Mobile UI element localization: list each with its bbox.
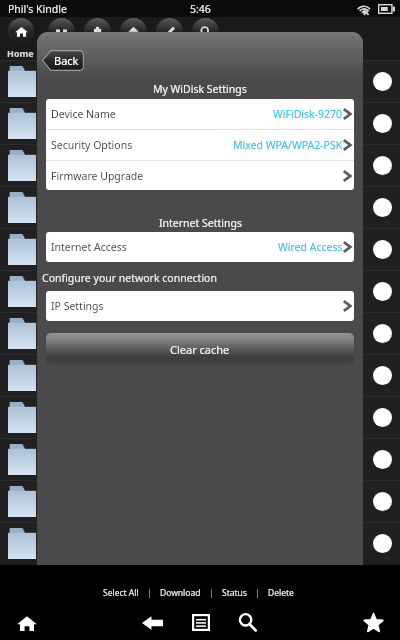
button[interactable] <box>0 354 400 396</box>
button[interactable] <box>192 18 219 45</box>
staticText: Mixed WPA/WPA2-PSK <box>233 138 343 152</box>
staticText: Internet Settings <box>159 216 242 230</box>
staticText: Back <box>54 53 79 68</box>
staticText: Phil's Kindle <box>8 2 67 16</box>
button[interactable]: Select All <box>103 587 139 599</box>
button[interactable]: Clear cache <box>46 333 354 365</box>
staticText: Firmware Upgrade <box>51 169 144 183</box>
button[interactable] <box>0 480 400 522</box>
staticText: 5:46 <box>190 2 211 16</box>
button[interactable] <box>0 144 400 186</box>
button[interactable]: Security Options <box>46 130 354 160</box>
staticText: Device Name <box>51 107 116 121</box>
button[interactable]: Download <box>160 587 201 599</box>
staticText: Configure your network connection <box>42 271 217 285</box>
staticText: Security Options <box>51 138 133 152</box>
button[interactable] <box>0 228 400 270</box>
button[interactable] <box>0 270 400 312</box>
button[interactable] <box>156 18 183 45</box>
button[interactable] <box>0 312 400 354</box>
staticText: WiFiDisk-9270 <box>273 107 343 121</box>
button[interactable]: Back <box>42 50 84 71</box>
button[interactable] <box>0 522 400 564</box>
staticText: | <box>209 587 214 599</box>
button[interactable]: Delete <box>268 587 294 599</box>
staticText: My WiDisk Settings <box>153 82 247 96</box>
staticText: | <box>255 587 260 599</box>
button[interactable]: Menu <box>179 605 223 640</box>
staticText: | <box>147 587 152 599</box>
staticText: Home <box>7 47 34 59</box>
button[interactable]: Home <box>8 18 34 44</box>
button[interactable] <box>0 438 400 480</box>
button[interactable]: Internet Access <box>46 232 354 262</box>
button[interactable]: IP Settings <box>46 291 354 321</box>
staticText: Wired Access <box>278 240 343 254</box>
button[interactable] <box>0 102 400 144</box>
button[interactable] <box>84 18 111 45</box>
button[interactable]: Favorites <box>351 605 395 640</box>
button[interactable] <box>0 396 400 438</box>
button[interactable]: Search <box>225 605 269 640</box>
button[interactable]: Home <box>5 605 49 640</box>
button[interactable] <box>120 18 147 45</box>
staticText: IP Settings <box>51 299 104 313</box>
button[interactable] <box>0 60 400 102</box>
staticText: Internet Access <box>51 240 127 254</box>
button[interactable] <box>48 18 75 45</box>
button[interactable]: Device Name <box>46 99 354 129</box>
button[interactable]: Status <box>222 587 247 599</box>
button[interactable] <box>0 186 400 228</box>
button[interactable]: Back <box>130 605 174 640</box>
staticText: Clear cache <box>170 342 230 357</box>
button[interactable]: Firmware Upgrade <box>46 161 354 190</box>
